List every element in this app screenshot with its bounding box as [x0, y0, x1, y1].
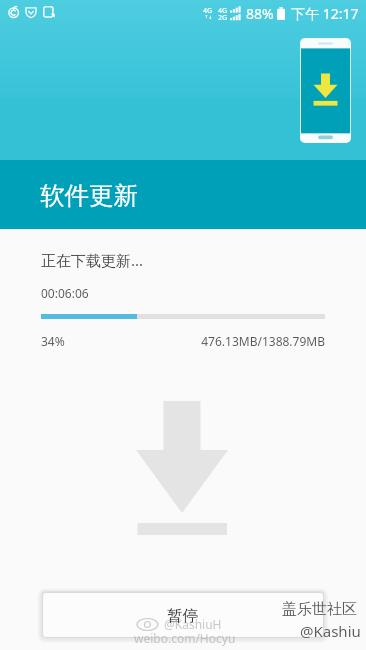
staticText: 2G [218, 13, 228, 23]
staticText: 下午 12:17 [291, 4, 359, 23]
staticText: 暂停 [167, 606, 199, 626]
staticText: 软件更新 [40, 180, 138, 211]
button[interactable]: 暂停 [40, 590, 326, 640]
staticText: @KashiuH [164, 616, 222, 632]
other: Security notification [25, 6, 37, 18]
staticText: weibo.com/Hocyu [134, 630, 236, 646]
staticText: 正在下载更新... [41, 250, 144, 270]
staticText: @Kashiu [300, 621, 361, 641]
staticText: 盖乐世社区 [282, 600, 357, 619]
staticText: 476.13MB/1388.79MB [65, 333, 325, 349]
other: Music notification [8, 6, 20, 18]
staticText: 88% [246, 4, 274, 23]
staticText: 00:06:06 [41, 285, 89, 301]
staticText: 4G [218, 6, 228, 16]
staticText: 34% [41, 333, 65, 349]
other: Screenshot notification [43, 6, 55, 18]
staticText: 4G [203, 6, 213, 16]
